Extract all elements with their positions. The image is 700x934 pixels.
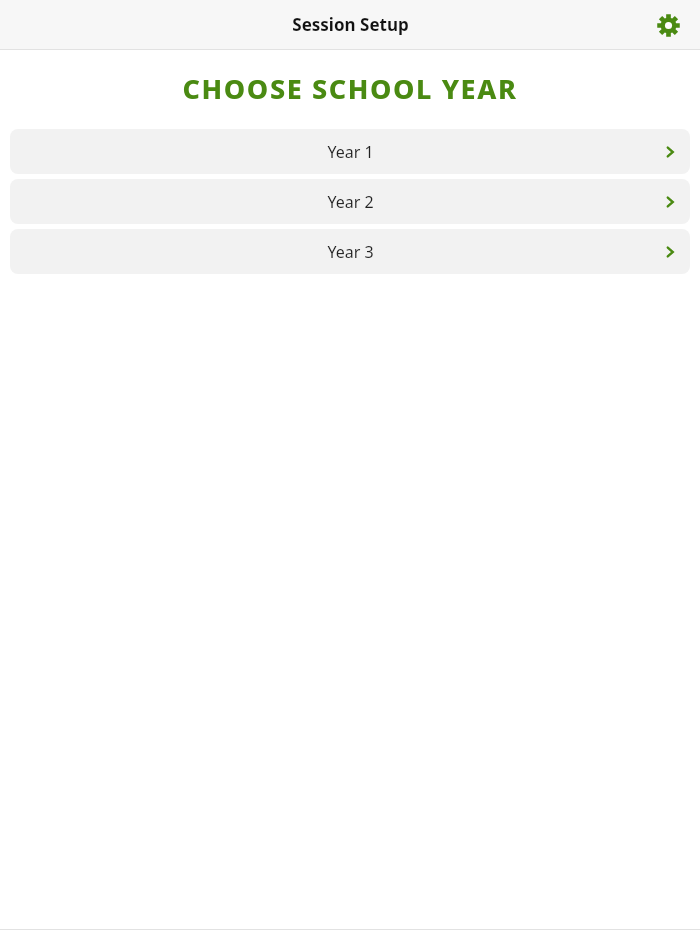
button[interactable]: Settings	[650, 7, 686, 43]
button[interactable]: Year 3	[10, 229, 690, 274]
staticText: Year 2	[327, 191, 374, 213]
staticText: Session Setup	[292, 13, 409, 36]
button[interactable]: Year 2	[10, 179, 690, 224]
staticText: Year 1	[327, 141, 374, 163]
staticText: Year 3	[327, 241, 374, 263]
staticText: CHOOSE SCHOOL YEAR	[0, 70, 700, 107]
button[interactable]: Year 1	[10, 129, 690, 174]
